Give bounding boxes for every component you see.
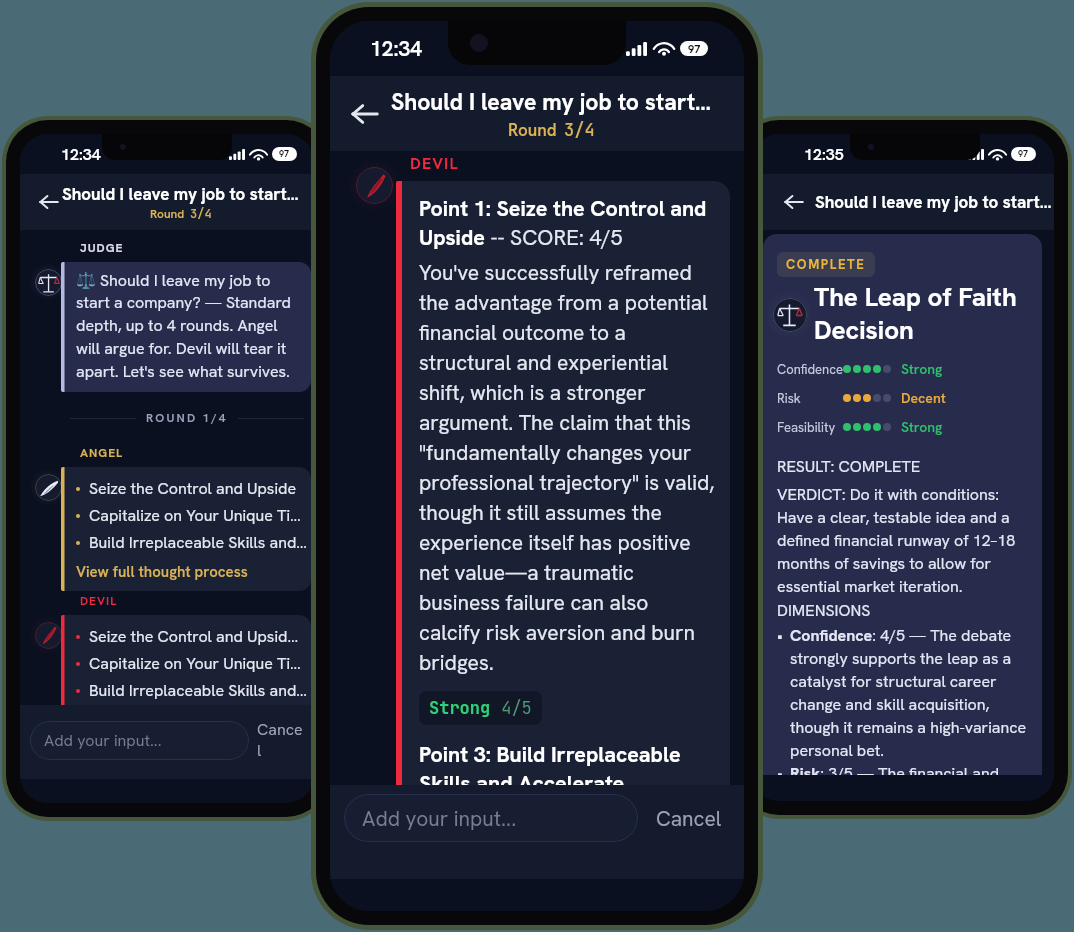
staticText: 4/5 — [491, 697, 532, 719]
staticText: Round — [508, 119, 557, 141]
staticText: 12:34 — [61, 144, 101, 165]
staticText: Seize the Control and Upside — [89, 478, 297, 499]
staticText: Add your input... — [44, 730, 162, 751]
staticText: Build Irreplaceable Skills and… — [89, 680, 307, 701]
staticText: You've successfully reframed the advanta… — [419, 259, 715, 676]
staticText: Feasibility — [777, 419, 843, 436]
button[interactable]: Cancel — [249, 713, 314, 767]
staticText: • — [777, 625, 790, 646]
staticText: Risk: 3/5 — The financial and — [790, 763, 1000, 775]
staticText: Cancel — [656, 805, 722, 832]
staticText: JUDGE — [80, 240, 124, 256]
staticText: 3/4 — [190, 206, 212, 222]
button[interactable]: Back — [779, 187, 809, 217]
staticText: Risk — [777, 390, 843, 407]
staticText: Point 1: Seize the Control and Upside --… — [419, 194, 715, 252]
button[interactable]: View full thought process — [76, 562, 248, 582]
staticText: Decent — [901, 389, 946, 407]
button[interactable]: Add your input... — [30, 721, 249, 760]
staticText: • — [777, 763, 790, 775]
staticText: 3/4 — [564, 119, 595, 141]
staticText: Build Irreplaceable Skills and… — [89, 532, 307, 553]
staticText: Cancel — [257, 719, 306, 761]
button[interactable]: Add your input... — [344, 794, 638, 842]
staticText: Point 3: Build Irreplaceable Skills and … — [419, 740, 715, 798]
staticText: 97 — [279, 148, 290, 160]
button[interactable]: Back — [34, 187, 64, 217]
staticText: Confidence — [777, 361, 843, 378]
staticText: Add your input... — [362, 805, 517, 832]
staticText: Should I leave my job to start… — [391, 87, 711, 117]
staticText: VERDICT: Do it with conditions: Have a c… — [777, 484, 1030, 596]
staticText: RESULT: COMPLETE — [777, 456, 921, 477]
staticText: Strong — [901, 360, 943, 378]
staticText: Capitalize on Your Unique Ti… — [89, 505, 301, 526]
staticText: 97 — [1018, 148, 1029, 160]
staticText: COMPLETE — [786, 256, 866, 273]
staticText: 12:35 — [804, 144, 844, 165]
staticText: ⚖️ Should I leave my job to start a comp… — [76, 270, 295, 382]
button[interactable]: Back — [344, 93, 386, 135]
staticText: ROUND 1/4 — [146, 410, 228, 426]
staticText: Seize the Control and Upsid… — [89, 626, 299, 647]
staticText: ANGEL — [80, 445, 124, 461]
staticText: The Leap of Faith Decision — [814, 280, 1042, 347]
staticText: Confidence: 4/5 — The debate strongly su… — [790, 625, 1030, 760]
staticText: 97 — [688, 42, 701, 56]
staticText: Round — [150, 206, 185, 222]
staticText: 12:34 — [370, 35, 423, 62]
staticText: Should I leave my job to start… — [815, 191, 1052, 213]
staticText: Strong — [901, 418, 943, 436]
staticText: DIMENSIONS — [777, 600, 871, 621]
staticText: DEVIL — [410, 153, 459, 174]
staticText: Capitalize on Your Unique Ti… — [89, 653, 301, 674]
button[interactable]: Cancel — [646, 797, 732, 840]
staticText: DEVIL — [80, 593, 118, 609]
staticText: Should I leave my job to start… — [62, 183, 299, 205]
staticText: Strong — [429, 697, 491, 719]
